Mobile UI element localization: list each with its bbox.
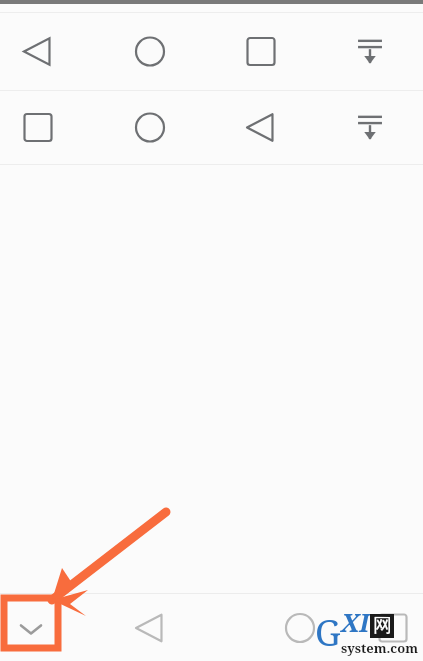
staticText: system.com: [341, 639, 419, 657]
button[interactable]: Hide navigation bar: [0, 594, 62, 661]
staticText: 网: [373, 614, 392, 638]
button[interactable]: [0, 91, 423, 164]
button[interactable]: Back: [62, 594, 237, 661]
button[interactable]: Recent apps: [362, 594, 423, 661]
button[interactable]: [0, 13, 423, 90]
staticText: XI: [341, 605, 370, 639]
staticText: G: [315, 608, 341, 657]
button[interactable]: Home: [237, 594, 362, 661]
